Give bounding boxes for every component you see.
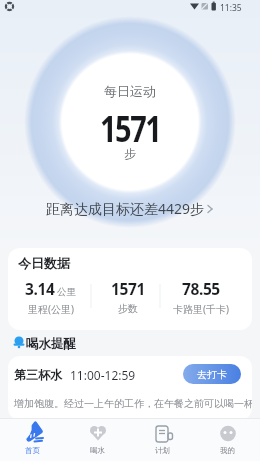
staticText: 增加饱腹。经过一上午的工作，在午餐之前可以喝一杯	[14, 397, 252, 410]
staticText: 首页	[25, 446, 40, 455]
button[interactable]: 去打卡	[183, 364, 241, 384]
button[interactable]: 喝水	[65, 418, 130, 461]
staticText: 我的	[220, 446, 235, 455]
staticText: 1571	[111, 278, 145, 299]
staticText: 公里	[57, 286, 76, 298]
staticText: 里程(公里)	[28, 302, 74, 316]
staticText: 喝水	[90, 446, 105, 455]
button[interactable]: 我的	[195, 418, 260, 461]
staticText: 去打卡	[197, 368, 227, 381]
staticText: 卡路里(千卡)	[173, 302, 229, 316]
staticText: 每日运动	[104, 83, 156, 99]
staticText: 喝水提醒	[26, 336, 76, 352]
button[interactable]: 首页	[0, 418, 65, 461]
staticText: 11:00-12:59	[70, 367, 136, 383]
staticText: 1571	[100, 103, 161, 152]
staticText: 步	[124, 146, 136, 161]
staticText: 11:35	[220, 2, 242, 14]
staticText: 计划	[155, 446, 170, 455]
staticText: 步数	[118, 302, 138, 315]
staticText: 78.55	[182, 278, 220, 299]
button[interactable]: 计划	[130, 418, 195, 461]
staticText: 第三杯水	[14, 367, 62, 382]
staticText: 距离达成目标还差4429步	[46, 199, 205, 218]
staticText: 3.14	[25, 278, 55, 299]
button[interactable]: 距离达成目标还差4429步	[0, 199, 260, 218]
staticText: 今日数据	[18, 255, 70, 271]
